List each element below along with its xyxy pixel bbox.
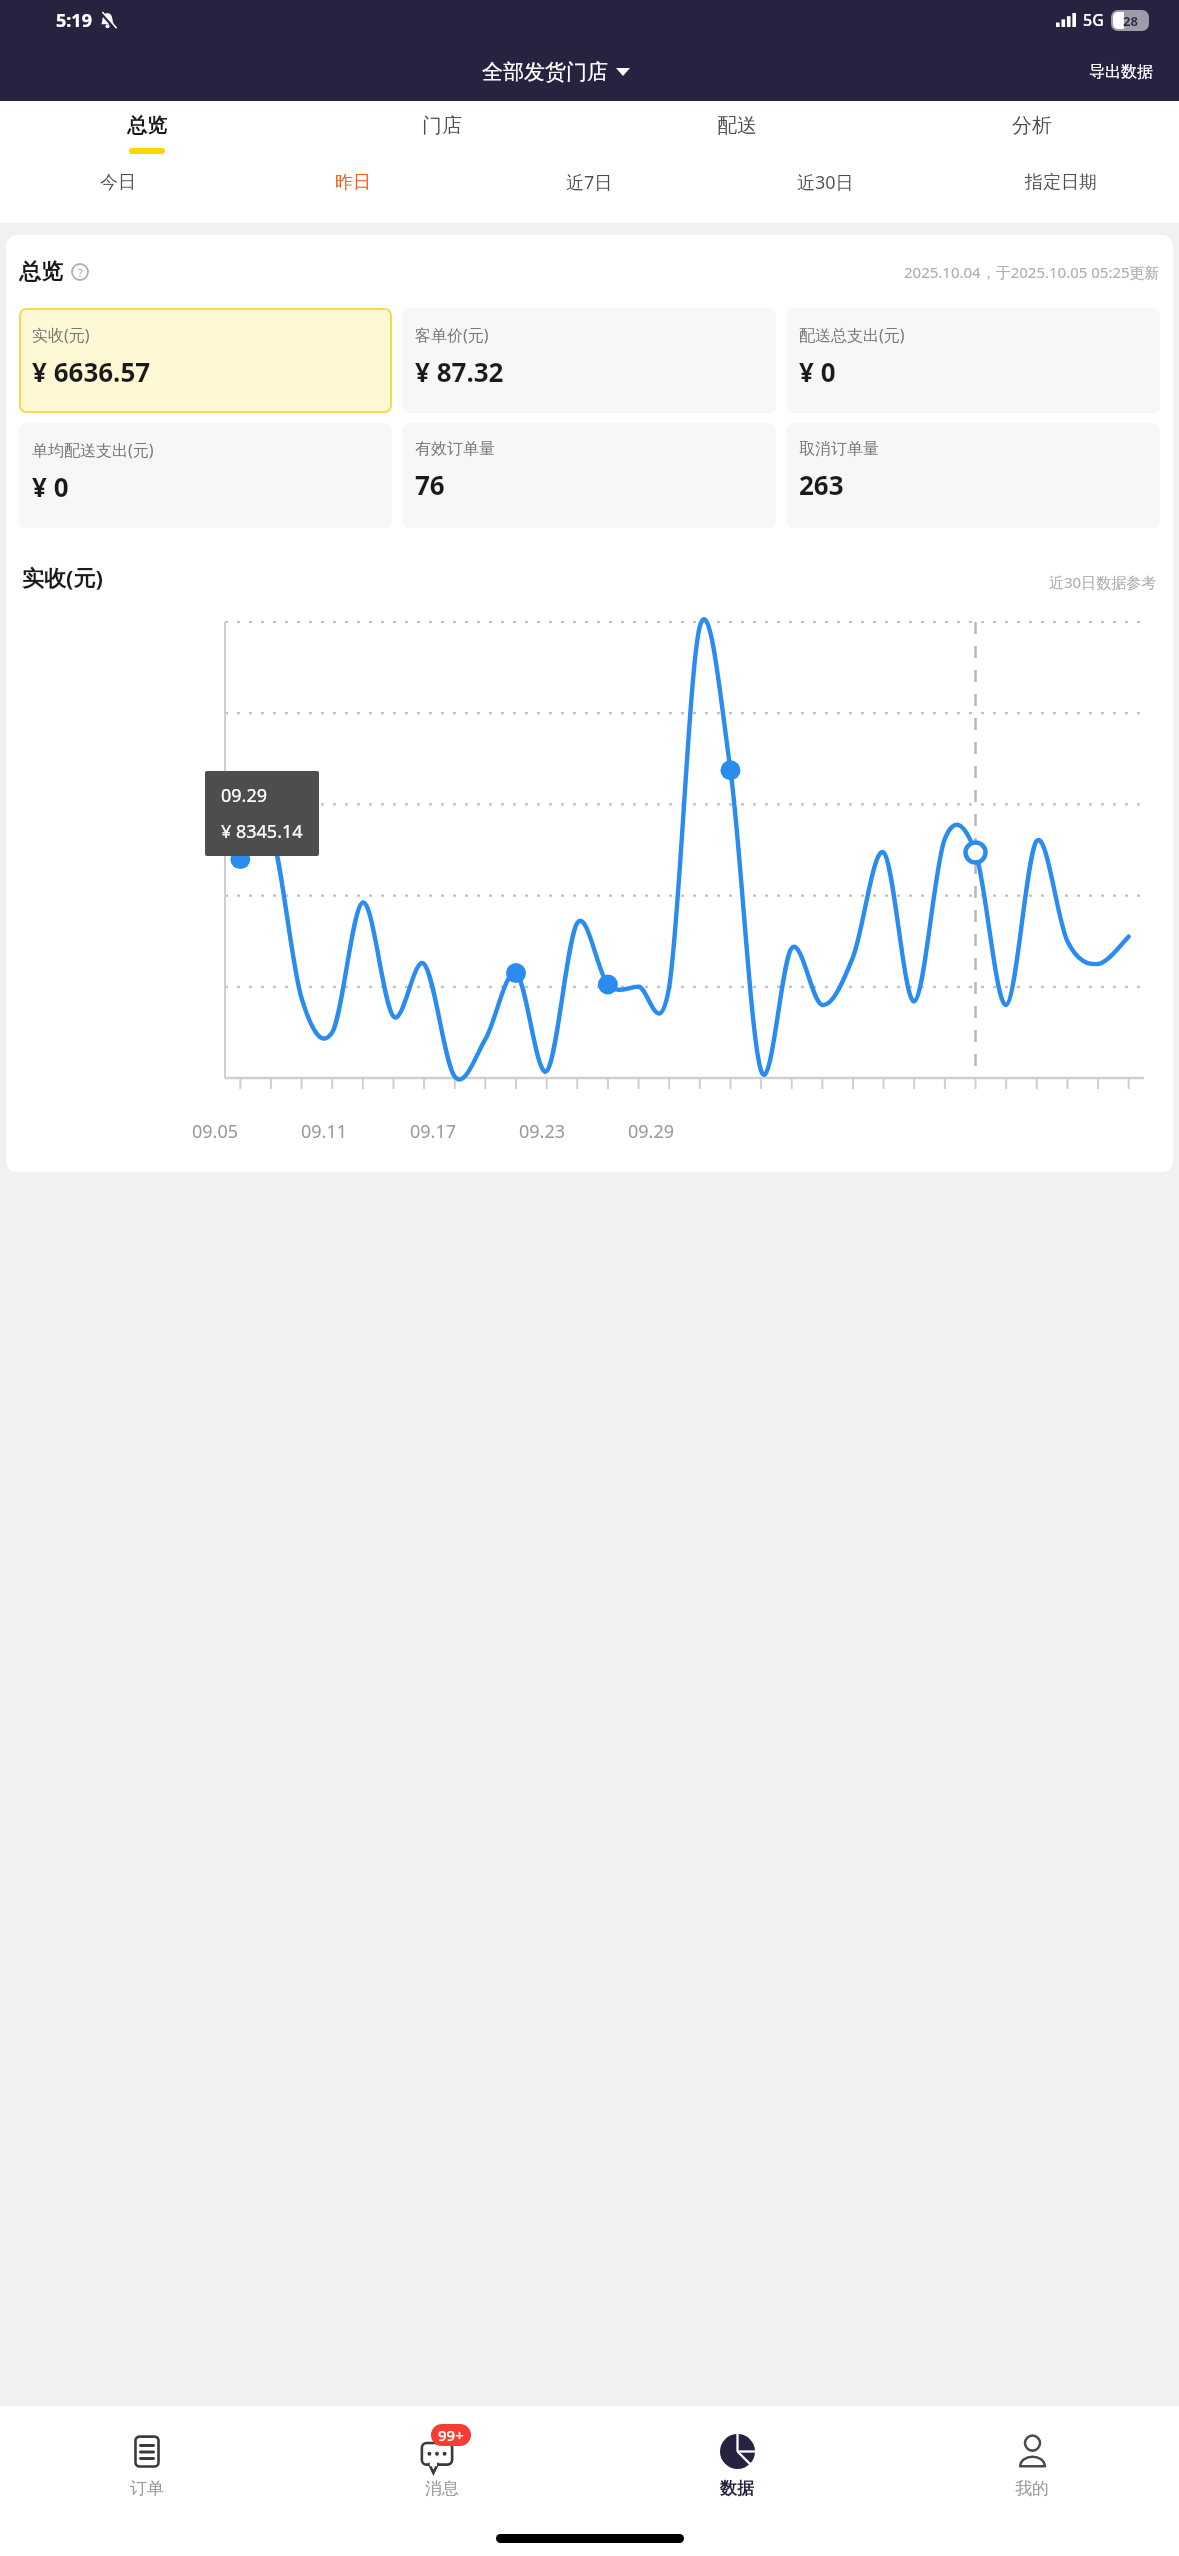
button[interactable]: 今日	[0, 171, 235, 194]
staticText: 09.23	[519, 1119, 566, 1144]
staticText: 09.11	[301, 1119, 348, 1144]
button[interactable]: 近7日	[471, 170, 707, 195]
staticText: 全部发货门店	[482, 59, 608, 85]
staticText: 分析	[1012, 113, 1052, 138]
button[interactable]: 昨日	[235, 171, 471, 194]
staticText: 09.17	[410, 1119, 457, 1144]
button[interactable]: 有效订单量	[402, 423, 776, 528]
staticText: 总览	[127, 113, 167, 138]
button[interactable]: 帮助	[71, 263, 89, 281]
button[interactable]: 实收(元)	[19, 308, 392, 413]
button[interactable]: 取消订单量	[786, 423, 1160, 528]
staticText: 28	[1123, 12, 1138, 30]
other: 数据	[720, 2434, 755, 2469]
button[interactable]: 我的	[884, 2406, 1179, 2520]
button[interactable]: 配送	[589, 113, 884, 154]
button[interactable]: 全部发货门店	[482, 59, 630, 85]
button[interactable]: 客单价(元)	[402, 308, 776, 413]
other: 消息	[419, 2438, 455, 2474]
staticText: 5G	[1083, 9, 1104, 31]
staticText: 近7日	[566, 170, 613, 195]
staticText: ¥ 0	[799, 354, 836, 389]
staticText: 我的	[1015, 2478, 1049, 2499]
staticText: 订单	[130, 2478, 164, 2499]
button[interactable]: 订单	[0, 2406, 294, 2520]
staticText: 263	[799, 467, 844, 502]
button[interactable]: 导出数据	[1089, 62, 1153, 82]
button[interactable]: 消息	[294, 2406, 589, 2520]
staticText: 总览	[19, 258, 63, 286]
other: 我的	[1015, 2434, 1050, 2469]
staticText: ?	[78, 265, 83, 280]
staticText: 客单价(元)	[415, 324, 489, 346]
staticText: 导出数据	[1089, 62, 1153, 82]
staticText: ¥ 6636.57	[32, 354, 151, 389]
button[interactable]: 数据	[589, 2406, 884, 2520]
staticText: 取消订单量	[799, 439, 879, 459]
button[interactable]: 总览	[0, 113, 294, 154]
staticText: 单均配送支出(元)	[32, 439, 154, 461]
staticText: 76	[415, 467, 445, 502]
button[interactable]: 近30日	[707, 170, 943, 195]
button[interactable]: 配送总支出(元)	[786, 308, 1160, 413]
staticText: 有效订单量	[415, 439, 495, 459]
button[interactable]: 分析	[884, 113, 1179, 154]
staticText: 09.29	[221, 783, 268, 808]
other: 订单	[129, 2433, 165, 2469]
staticText: 配送总支出(元)	[799, 324, 905, 346]
staticText: 近30日	[797, 170, 854, 195]
button[interactable]: 单均配送支出(元)	[19, 423, 392, 528]
staticText: ¥ 0	[32, 469, 69, 504]
staticText: 今日	[100, 171, 136, 194]
staticText: 99+	[438, 2425, 464, 2445]
staticText: 实收(元)	[32, 324, 90, 346]
staticText: 指定日期	[1025, 171, 1097, 194]
staticText: 数据	[720, 2478, 754, 2499]
staticText: 09.05	[192, 1119, 239, 1144]
staticText: 近30日数据参考	[1049, 572, 1157, 592]
staticText: 实收(元)	[22, 562, 103, 592]
button[interactable]: 门店	[294, 113, 589, 154]
staticText: 2025.10.04，于2025.10.05 05:25更新	[904, 262, 1160, 282]
staticText: 5:19	[56, 8, 92, 33]
button[interactable]: 指定日期	[943, 171, 1179, 194]
staticText: ¥ 8345.14	[221, 819, 303, 844]
staticText: 09.29	[628, 1119, 675, 1144]
staticText: 昨日	[335, 171, 371, 194]
staticText: 门店	[422, 113, 462, 138]
staticText: ¥ 87.32	[415, 354, 504, 389]
staticText: 消息	[425, 2478, 459, 2499]
staticText: 配送	[717, 113, 757, 138]
